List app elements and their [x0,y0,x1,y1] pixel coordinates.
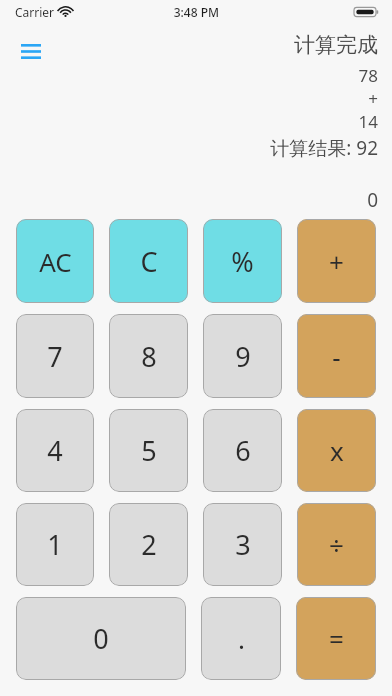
button[interactable]: % [203,219,282,303]
button[interactable]: ÷ [297,503,376,586]
staticText: 0 [93,620,109,657]
staticText: C [140,243,158,280]
button[interactable]: - [297,314,376,398]
button[interactable]: Menu [14,34,48,68]
staticText: 4 [47,432,63,469]
staticText: Carrier [14,4,54,20]
staticText: + [329,244,344,279]
staticText: 计算结果: 92 [270,135,378,161]
button[interactable]: 0 [16,597,186,680]
button[interactable]: 6 [203,409,282,492]
staticText: x [330,433,344,468]
staticText: 78 [358,64,378,87]
button[interactable]: 9 [203,314,282,398]
button[interactable]: 1 [16,503,94,586]
button[interactable]: AC [16,219,94,303]
button[interactable]: 2 [109,503,188,586]
button[interactable]: . [201,597,281,680]
button[interactable]: 8 [109,314,188,398]
button[interactable]: 7 [16,314,94,398]
staticText: + [368,87,378,110]
staticText: ÷ [329,527,344,562]
staticText: 0 [367,187,378,213]
button[interactable]: + [297,219,376,303]
staticText: 9 [235,338,251,375]
button[interactable]: 5 [109,409,188,492]
staticText: - [332,339,341,374]
staticText: 3 [235,526,251,563]
button[interactable]: C [109,219,188,303]
staticText: AC [39,244,72,279]
button[interactable]: 4 [16,409,94,492]
button[interactable]: 3 [203,503,282,586]
staticText: 6 [235,432,251,469]
staticText: 1 [47,526,63,563]
staticText: 2 [141,526,157,563]
staticText: 3:48 PM [173,4,219,20]
button[interactable]: x [297,409,376,492]
staticText: . [238,621,245,656]
staticText: = [329,621,344,656]
staticText: 14 [358,110,378,133]
staticText: 5 [141,432,157,469]
staticText: 7 [47,338,63,375]
button[interactable]: = [296,597,376,680]
staticText: 8 [141,338,157,375]
staticText: 计算完成 [294,32,378,58]
staticText: % [231,243,254,280]
